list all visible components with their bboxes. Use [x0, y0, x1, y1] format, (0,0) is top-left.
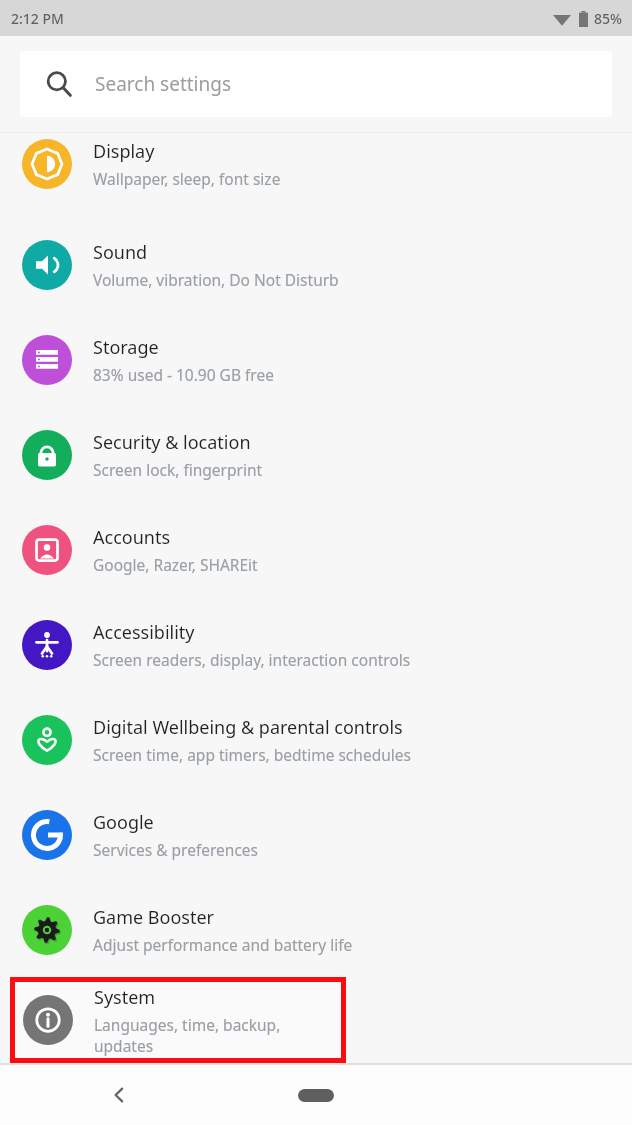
button[interactable]: Digital Wellbeing & parental controls [0, 692, 632, 787]
button[interactable]: System [15, 982, 341, 1058]
button[interactable]: Search settings [20, 51, 612, 117]
staticText: Volume, vibration, Do Not Disturb [93, 269, 339, 290]
staticText: Google [93, 810, 154, 835]
staticText: Search settings [95, 71, 232, 97]
staticText: Adjust performance and battery life [93, 934, 353, 955]
button[interactable]: Security & location [0, 407, 632, 502]
button[interactable]: Storage [0, 312, 632, 407]
staticText: Screen lock, fingerprint [93, 459, 263, 480]
staticText: Screen time, app timers, bedtime schedul… [93, 744, 411, 765]
staticText: Languages, time, backup, updates [94, 1014, 341, 1056]
staticText: Google, Razer, SHAREit [93, 554, 258, 575]
staticText: Accessibility [93, 620, 195, 645]
button[interactable]: Display [0, 133, 632, 206]
staticText: Accounts [93, 525, 171, 550]
staticText: 2:12 PM [11, 9, 64, 28]
button[interactable]: Sound [0, 217, 632, 312]
staticText: 83% used - 10.90 GB free [93, 364, 274, 385]
staticText: System [94, 985, 156, 1010]
button[interactable]: Accounts [0, 502, 632, 597]
staticText: Wallpaper, sleep, font size [93, 168, 281, 189]
staticText: Screen readers, display, interaction con… [93, 649, 411, 670]
staticText: Services & preferences [93, 839, 258, 860]
button[interactable]: Game Booster [0, 882, 632, 977]
staticText: 85% [594, 9, 622, 28]
button[interactable]: Google [0, 787, 632, 882]
staticText: Display [93, 139, 155, 164]
staticText: Game Booster [93, 905, 215, 930]
button[interactable]: Accessibility [0, 597, 632, 692]
button[interactable]: Back [95, 1071, 143, 1119]
button[interactable]: Home [286, 1075, 346, 1115]
staticText: Storage [93, 335, 159, 360]
staticText: Sound [93, 240, 148, 265]
staticText: Digital Wellbeing & parental controls [93, 715, 403, 740]
staticText: Security & location [93, 430, 251, 455]
